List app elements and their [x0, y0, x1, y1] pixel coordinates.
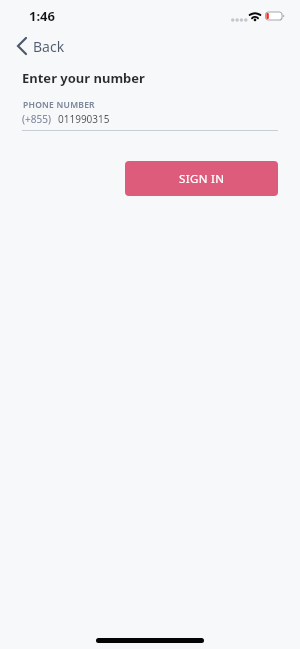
- button[interactable]: Back: [0, 33, 65, 59]
- staticText: 011990315: [58, 112, 110, 126]
- staticText: PHONE NUMBER: [23, 99, 95, 111]
- button[interactable]: SIGN IN: [125, 161, 278, 196]
- staticText: SIGN IN: [179, 171, 225, 187]
- staticText: 1:46: [29, 7, 55, 25]
- staticText: Enter your number: [22, 69, 145, 87]
- staticText: (+855): [22, 112, 51, 126]
- staticText: Back: [33, 37, 65, 56]
